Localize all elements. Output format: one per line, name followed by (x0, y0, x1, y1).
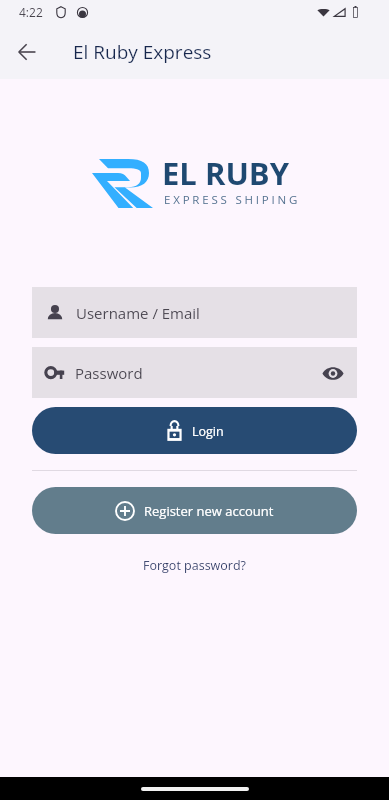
staticText: Username / Email (76, 303, 200, 323)
button[interactable]: Login (32, 407, 357, 454)
button[interactable]: Username / Email (32, 287, 357, 338)
staticText: Password (75, 363, 143, 383)
staticText: 4:22 (19, 4, 43, 20)
staticText: Register new account (144, 502, 274, 520)
button[interactable]: Show password (311, 351, 355, 395)
button[interactable]: Password (32, 347, 357, 398)
button[interactable]: Register new account (32, 487, 357, 534)
staticText: EXPRESS SHIPING (164, 192, 301, 208)
staticText: EL RUBY (162, 152, 289, 194)
button[interactable]: Forgot password? (133, 553, 256, 578)
staticText: Login (192, 423, 224, 440)
button[interactable]: Back (3, 28, 51, 76)
staticText: El Ruby Express (73, 39, 212, 65)
